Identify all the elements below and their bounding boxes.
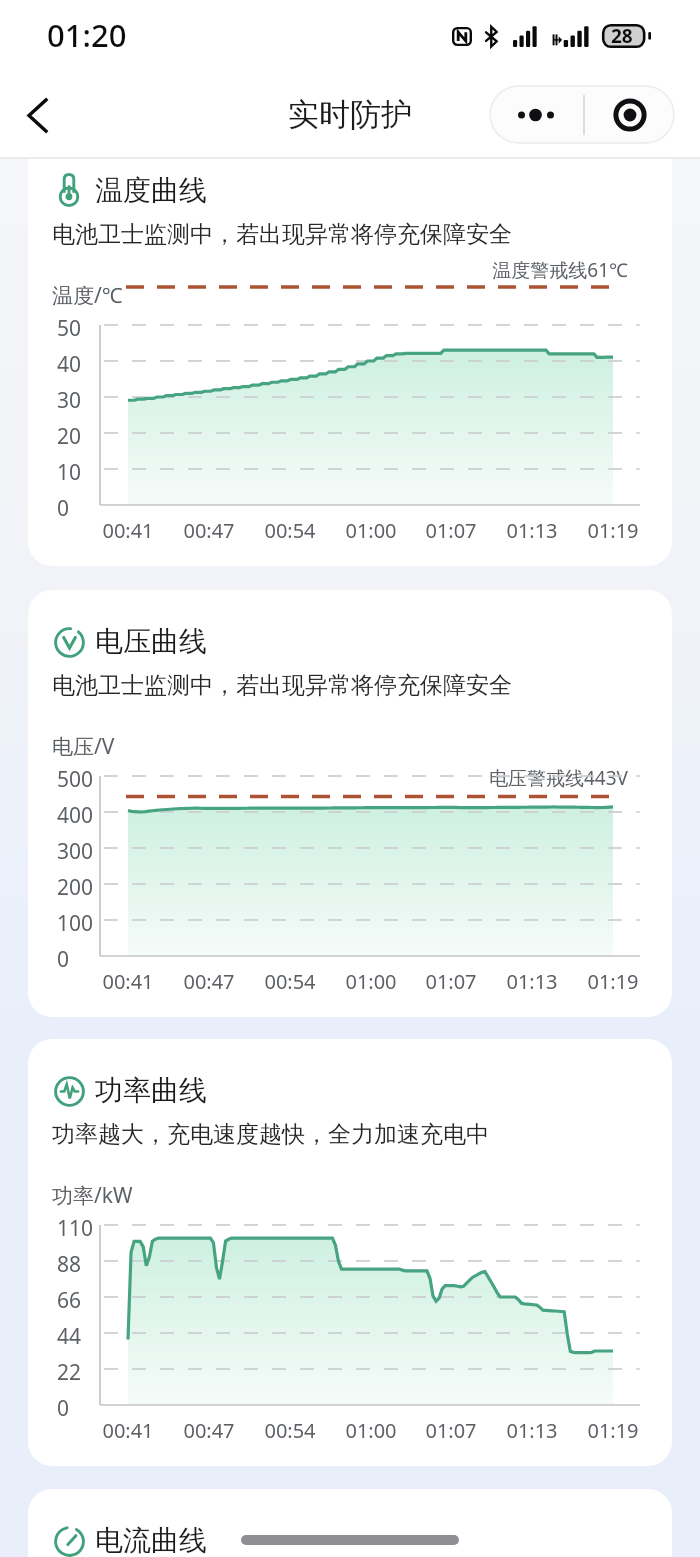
staticText: 01:19 <box>568 517 658 544</box>
staticText: 01:13 <box>487 1417 577 1444</box>
staticText: 400 <box>57 801 94 830</box>
staticText: 100 <box>57 909 94 938</box>
staticText: 电流曲线 <box>95 1523 207 1557</box>
staticText: 温度/℃ <box>52 281 123 310</box>
staticText: 00:54 <box>245 1417 335 1444</box>
staticText: 20 <box>57 422 82 451</box>
staticText: 温度曲线 <box>95 173 207 208</box>
staticText: 40 <box>57 350 82 379</box>
staticText: 电压/V <box>52 732 115 761</box>
staticText: 00:41 <box>83 517 173 544</box>
staticText: 00:54 <box>245 517 335 544</box>
staticText: 00:47 <box>164 968 254 995</box>
button[interactable]: More options <box>489 85 583 144</box>
staticText: 00:47 <box>164 1417 254 1444</box>
staticText: 01:07 <box>406 1417 496 1444</box>
staticText: 500 <box>57 765 94 794</box>
button[interactable]: 电流曲线 <box>28 1489 672 1557</box>
staticText: 01:00 <box>326 968 416 995</box>
staticText: 功率曲线 <box>95 1073 207 1108</box>
staticText: 01:13 <box>487 517 577 544</box>
staticText: 温度警戒线61℃ <box>28 257 628 283</box>
staticText: 200 <box>57 873 94 902</box>
staticText: 0 <box>57 945 70 974</box>
staticText: 88 <box>57 1250 82 1279</box>
staticText: 300 <box>57 837 94 866</box>
staticText: 电池卫士监测中，若出现异常将停充保障安全 <box>52 220 512 249</box>
button[interactable]: 功率曲线 <box>28 1039 672 1466</box>
staticText: 0 <box>57 494 70 523</box>
staticText: 66 <box>57 1286 82 1315</box>
staticText: 00:47 <box>164 517 254 544</box>
button[interactable]: 电压曲线 <box>28 590 672 1017</box>
button[interactable]: 温度曲线 <box>28 139 672 566</box>
staticText: 00:41 <box>83 968 173 995</box>
button[interactable]: Record <box>585 85 675 144</box>
staticText: 功率/kW <box>52 1181 133 1210</box>
staticText: 50 <box>57 314 82 343</box>
staticText: 0 <box>57 1394 70 1423</box>
staticText: 实时防护 <box>288 95 412 134</box>
staticText: 22 <box>57 1358 82 1387</box>
staticText: 110 <box>57 1214 94 1243</box>
staticText: 01:19 <box>568 1417 658 1444</box>
staticText: 01:19 <box>568 968 658 995</box>
staticText: 01:07 <box>406 517 496 544</box>
staticText: 00:41 <box>83 1417 173 1444</box>
staticText: 电压警戒线443V <box>28 765 628 791</box>
staticText: 电压曲线 <box>95 624 207 659</box>
staticText: 01:07 <box>406 968 496 995</box>
staticText: 10 <box>57 458 82 487</box>
button[interactable]: Back <box>9 87 65 143</box>
staticText: 01:00 <box>326 1417 416 1444</box>
staticText: 功率越大，充电速度越快，全力加速充电中 <box>52 1120 489 1149</box>
staticText: 44 <box>57 1322 82 1351</box>
staticText: 01:00 <box>326 517 416 544</box>
staticText: 01:20 <box>47 14 127 56</box>
staticText: 00:54 <box>245 968 335 995</box>
staticText: 电池卫士监测中，若出现异常将停充保障安全 <box>52 671 512 700</box>
staticText: 28 <box>611 23 633 49</box>
staticText: 30 <box>57 386 82 415</box>
staticText: 01:13 <box>487 968 577 995</box>
